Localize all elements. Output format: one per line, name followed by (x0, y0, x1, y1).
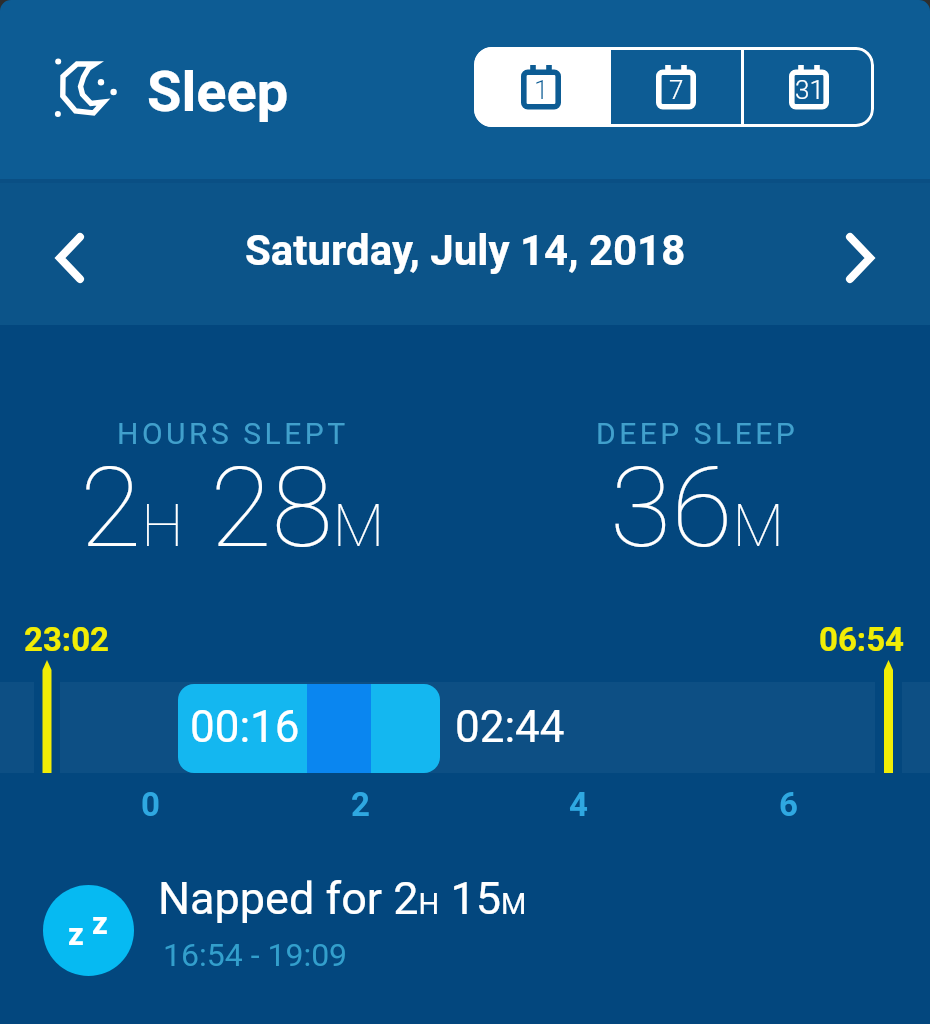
button[interactable]: 7 (611, 47, 741, 127)
staticText: 31 (795, 75, 824, 105)
button[interactable] (830, 220, 890, 296)
staticText: z (68, 916, 84, 952)
staticText: 00:16 (190, 701, 300, 753)
staticText: DEEP SLEEP (596, 416, 799, 451)
button[interactable]: 1 (474, 47, 608, 127)
staticText: 02:44 (455, 701, 565, 753)
staticText: 2H 28M (80, 442, 385, 573)
staticText: 06:54 (819, 620, 905, 659)
staticText: 2 (351, 785, 370, 824)
staticText: 7 (669, 75, 684, 105)
staticText: Saturday, July 14, 2018 (245, 226, 686, 275)
staticText: 4 (569, 785, 588, 824)
staticText: 1 (534, 75, 549, 105)
button[interactable]: 31 (744, 47, 874, 127)
staticText: 23:02 (24, 620, 110, 659)
staticText: Napped for 2H 15M (158, 872, 527, 925)
staticText: z (92, 905, 108, 941)
staticText: 0 (141, 785, 160, 824)
staticText: Sleep (147, 59, 289, 125)
staticText: 6 (779, 785, 798, 824)
staticText: 36M (610, 442, 785, 573)
staticText: HOURS SLEPT (117, 416, 349, 451)
button[interactable] (40, 220, 100, 296)
staticText: 16:54 - 19:09 (163, 936, 348, 974)
button[interactable] (30, 870, 650, 990)
